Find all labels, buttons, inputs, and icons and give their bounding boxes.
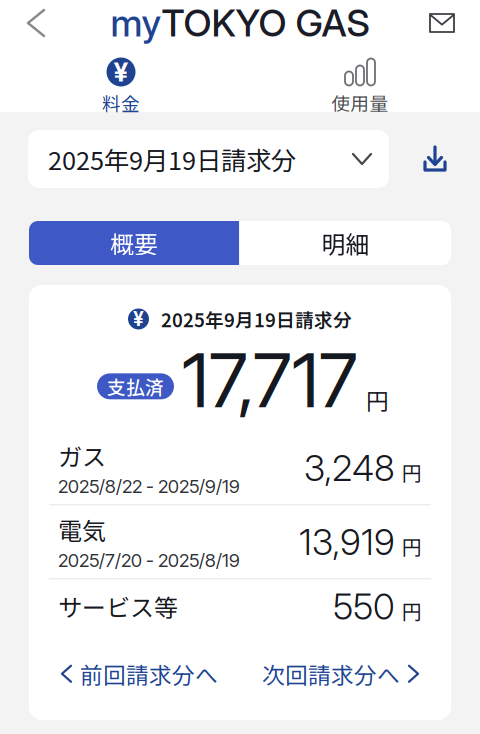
staticText: サービス等 — [58, 589, 178, 624]
staticText: 円 — [402, 532, 422, 561]
staticText: ¥ — [113, 56, 128, 88]
staticText: 3,248 — [304, 446, 395, 490]
button[interactable]: 次回請求分へ — [262, 649, 418, 698]
staticText: 円 — [402, 458, 422, 487]
staticText: my — [110, 0, 161, 46]
staticText: 2025/7/20 - 2025/8/19 — [58, 549, 240, 571]
button[interactable]: 2025年9月19日請求分 — [28, 130, 389, 188]
button[interactable]: 明細 — [240, 221, 451, 265]
staticText: 円 — [366, 383, 389, 416]
button[interactable]: 使用量 — [280, 62, 440, 111]
staticText: ¥ — [133, 307, 144, 330]
button[interactable]: 概要 — [29, 221, 239, 265]
staticText: ガス — [58, 438, 106, 473]
staticText: 550 — [333, 585, 395, 628]
staticText: 次回請求分へ — [262, 657, 400, 690]
staticText: 2025年9月19日請求分 — [161, 305, 352, 332]
staticText: 明細 — [321, 226, 369, 260]
staticText: TOKYO GAS — [161, 0, 369, 46]
staticText: 前回請求分へ — [80, 657, 218, 690]
staticText: 料金 — [102, 89, 140, 116]
staticText: 2025/8/22 - 2025/9/19 — [58, 475, 240, 497]
button[interactable]: Back — [12, 0, 60, 47]
button[interactable]: Messages — [418, 0, 466, 47]
button[interactable]: 前回請求分へ — [62, 649, 218, 698]
staticText: 17,717 — [182, 335, 358, 425]
staticText: 支払済 — [107, 373, 164, 400]
button[interactable]: ¥ — [41, 62, 201, 111]
staticText: 使用量 — [331, 89, 388, 116]
staticText: 13,919 — [299, 520, 395, 564]
staticText: 円 — [402, 596, 422, 625]
staticText: 2025年9月19日請求分 — [48, 141, 296, 177]
staticText: 概要 — [110, 226, 158, 260]
button[interactable]: Download — [413, 137, 457, 181]
staticText: 電気 — [58, 512, 106, 547]
